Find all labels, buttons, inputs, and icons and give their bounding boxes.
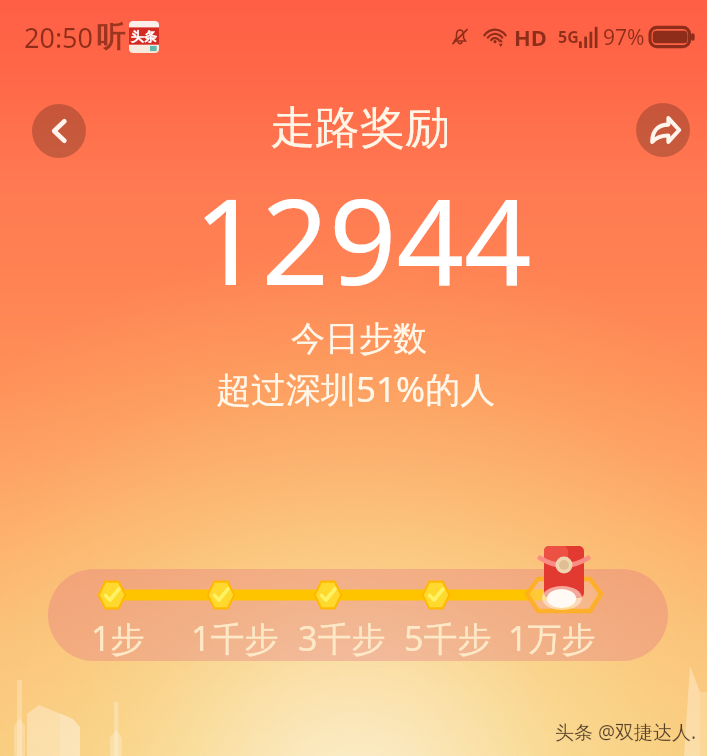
- staticText: 今日步数: [291, 317, 427, 360]
- staticText: HD: [514, 22, 547, 52]
- staticText: 1千步: [191, 615, 279, 661]
- staticText: 1万步: [508, 615, 596, 661]
- staticText: 走路奖励: [270, 100, 450, 154]
- staticText: 头条: [131, 28, 157, 44]
- staticText: 超过深圳51%的人: [216, 365, 496, 413]
- staticText: 97%: [603, 23, 645, 52]
- staticText: 头条 @双捷达人.: [555, 719, 697, 745]
- staticText: 听: [96, 19, 125, 56]
- button[interactable]: Share: [636, 103, 690, 157]
- button[interactable]: Back: [32, 104, 86, 158]
- button[interactable]: Toutiao: [129, 21, 159, 53]
- staticText: 3千步: [298, 615, 386, 661]
- staticText: 20:50: [24, 19, 94, 56]
- staticText: 12944: [194, 159, 532, 320]
- staticText: 1步: [91, 615, 145, 661]
- button[interactable]: [48, 569, 668, 661]
- staticText: 5千步: [404, 615, 492, 661]
- staticText: 5G: [558, 26, 579, 48]
